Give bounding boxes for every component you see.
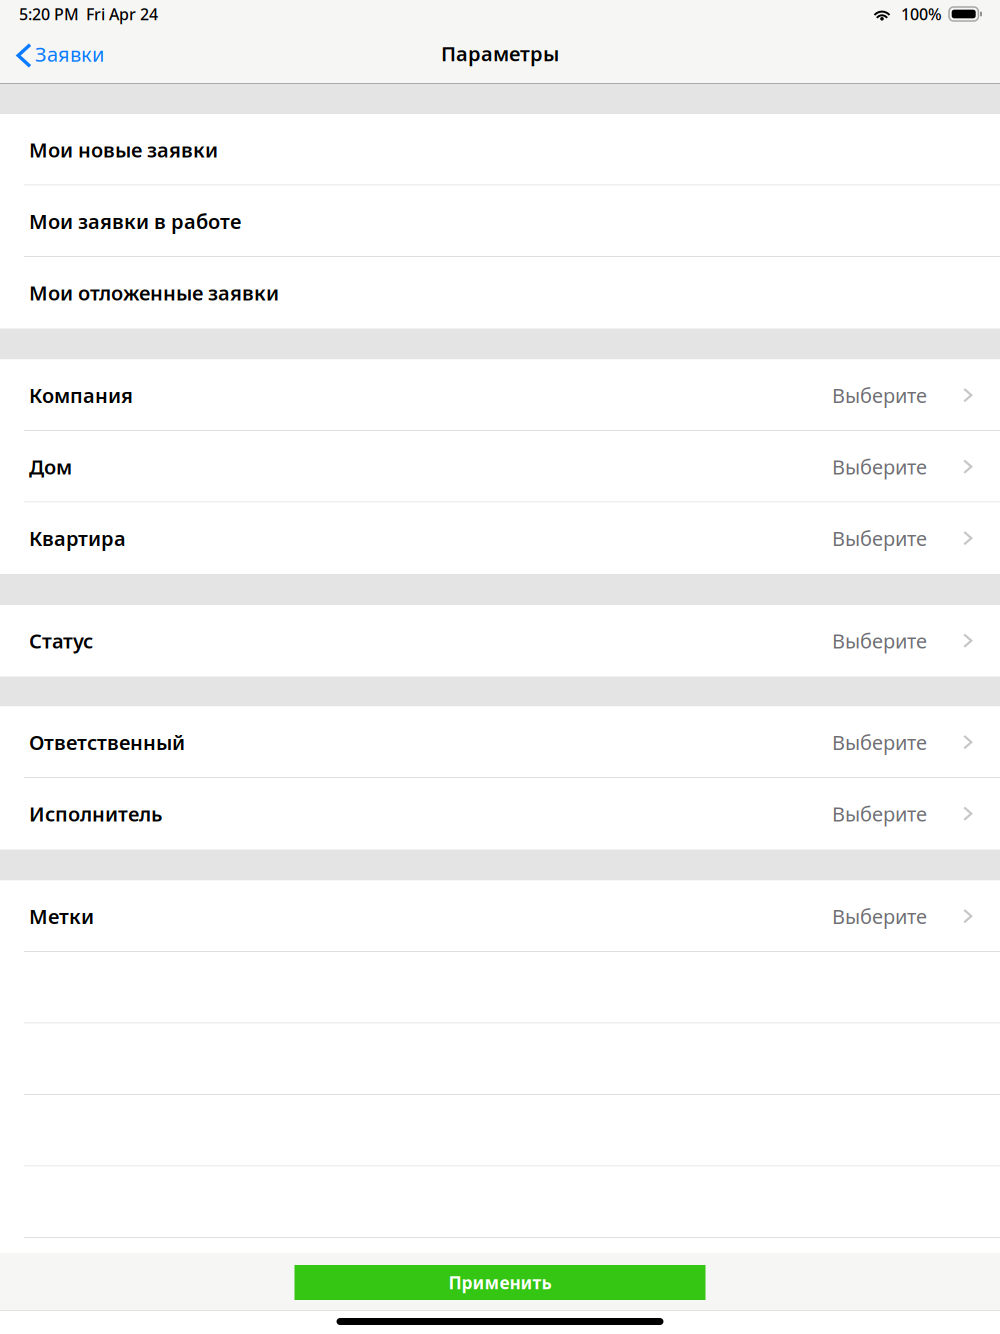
staticText: Выберите: [832, 903, 927, 930]
staticText: Выберите: [832, 729, 927, 756]
staticText: Ответственный: [29, 729, 185, 756]
button[interactable]: Применить: [294, 1265, 705, 1300]
staticText: Применить: [448, 1271, 551, 1294]
staticText: Квартира: [29, 525, 126, 552]
button[interactable]: Ответственный: [0, 706, 1000, 778]
staticText: Компания: [29, 382, 133, 409]
staticText: Выберите: [832, 627, 927, 654]
button[interactable]: Квартира: [0, 502, 1000, 574]
button[interactable]: Исполнитель: [0, 778, 1000, 849]
staticText: Параметры: [441, 40, 559, 67]
staticText: Мои отложенные заявки: [29, 279, 279, 306]
button[interactable]: Мои новые заявки: [0, 114, 1000, 185]
staticText: Дом: [29, 453, 72, 480]
staticText: Заявки: [35, 41, 104, 67]
staticText: Исполнитель: [29, 800, 162, 827]
staticText: Выберите: [832, 525, 927, 552]
staticText: Выберите: [832, 382, 927, 409]
staticText: Метки: [29, 903, 94, 930]
staticText: Выберите: [832, 800, 927, 827]
staticText: Мои заявки в работе: [29, 208, 241, 235]
staticText: Fri Apr 24: [86, 3, 158, 25]
staticText: 100%: [901, 3, 942, 25]
button[interactable]: Заявки: [0, 28, 112, 83]
button[interactable]: Статус: [0, 605, 1000, 676]
staticText: 5:20 PM: [19, 3, 79, 25]
button[interactable]: Мои отложенные заявки: [0, 257, 1000, 328]
staticText: Статус: [29, 627, 93, 654]
button[interactable]: Метки: [0, 880, 1000, 952]
button[interactable]: Компания: [0, 359, 1000, 431]
staticText: Мои новые заявки: [29, 136, 218, 163]
button[interactable]: Мои заявки в работе: [0, 185, 1000, 257]
button[interactable]: Дом: [0, 431, 1000, 502]
staticText: Выберите: [832, 453, 927, 480]
